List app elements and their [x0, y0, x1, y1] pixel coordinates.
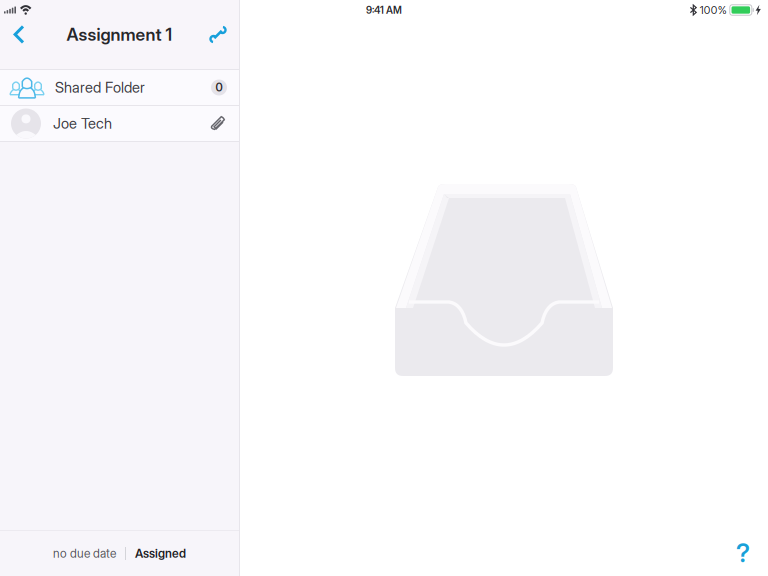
staticText: ? — [736, 538, 750, 568]
button[interactable]: Back — [3, 12, 35, 56]
staticText: 0 — [215, 81, 222, 94]
button[interactable]: Shared Folder — [0, 70, 239, 106]
button[interactable]: Help — [730, 538, 756, 568]
staticText: Assigned — [135, 546, 186, 561]
staticText: Shared Folder — [55, 79, 145, 96]
staticText: no due date — [53, 546, 116, 561]
button[interactable]: Joe Tech — [0, 106, 239, 142]
button[interactable]: Tools — [202, 12, 234, 56]
staticText: 100% — [700, 3, 727, 16]
staticText: 9:41 AM — [366, 4, 402, 16]
staticText: Joe Tech — [53, 115, 112, 132]
staticText: Assignment 1 — [66, 24, 172, 45]
